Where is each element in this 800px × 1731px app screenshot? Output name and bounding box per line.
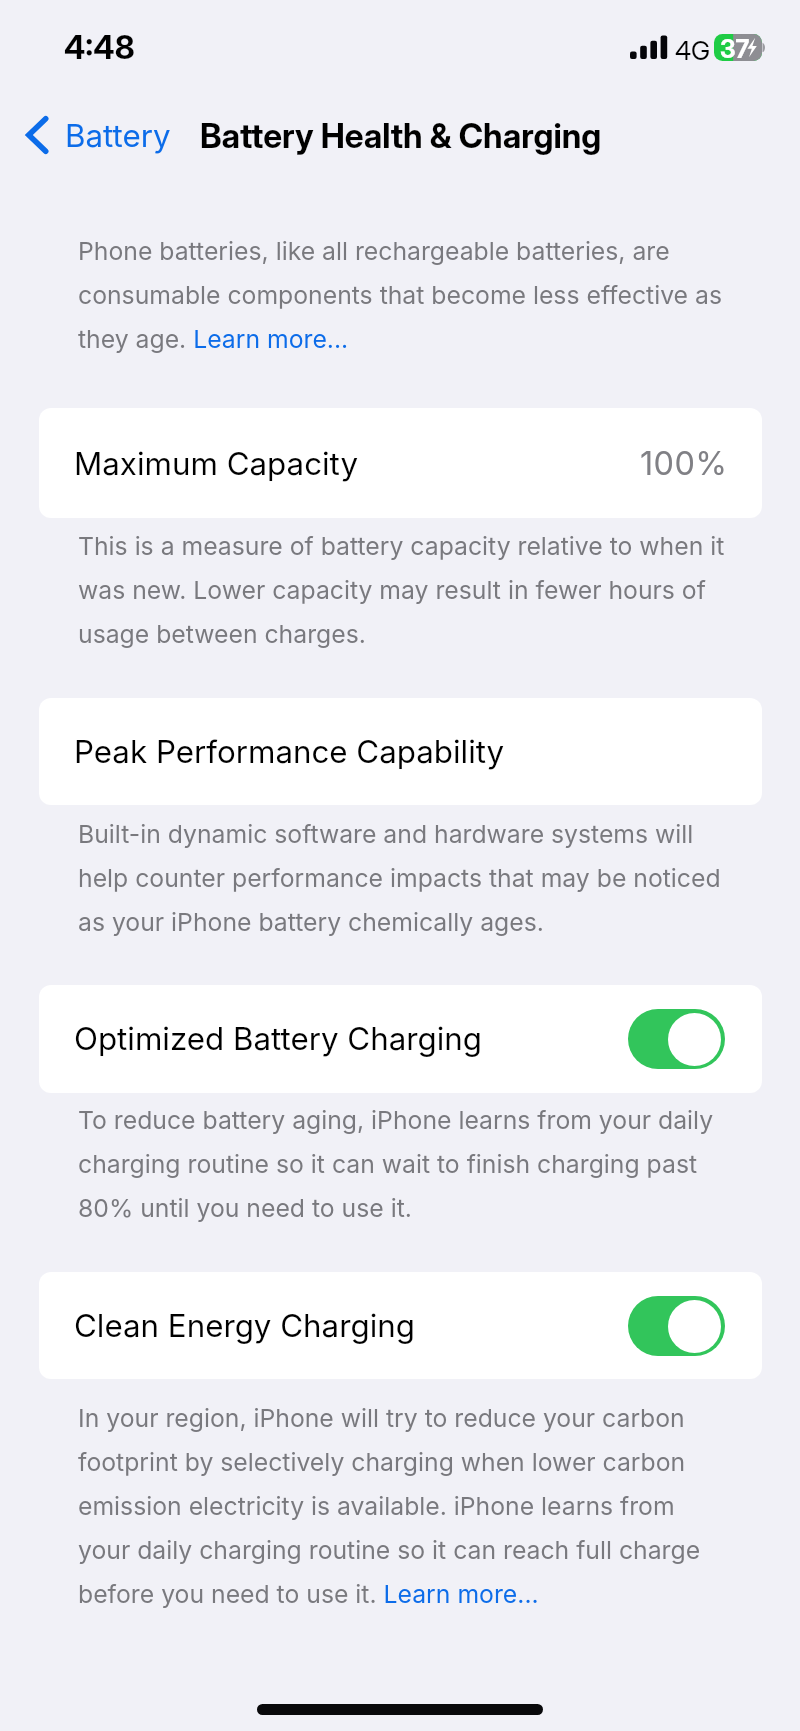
- staticText: To reduce battery aging, iPhone learns f…: [78, 1094, 728, 1226]
- staticText: Peak Performance Capability: [74, 733, 505, 771]
- staticText: Clean Energy Charging: [74, 1307, 415, 1345]
- staticText: This is a measure of battery capacity re…: [78, 520, 728, 652]
- button[interactable]: Phone batteries, like all rechargeable b…: [78, 225, 728, 357]
- staticText: 100%: [640, 444, 728, 483]
- button[interactable]: Clean Energy Charging: [39, 1272, 762, 1379]
- button[interactable]: Clean Energy Charging: [628, 1296, 725, 1356]
- button[interactable]: Maximum Capacity: [39, 408, 762, 518]
- staticText: 4:48: [64, 28, 135, 67]
- button[interactable]: Peak Performance Capability: [39, 698, 762, 805]
- staticText: Optimized Battery Charging: [74, 1020, 482, 1058]
- staticText: Maximum Capacity: [74, 445, 359, 483]
- button[interactable]: Back to Battery: [14, 104, 186, 166]
- staticText: Battery: [65, 117, 171, 155]
- staticText: 37: [720, 34, 750, 61]
- staticText: Built-in dynamic software and hardware s…: [78, 808, 728, 940]
- button[interactable]: In your region, iPhone will try to reduc…: [78, 1392, 728, 1612]
- staticText: Battery Health & Charging: [200, 116, 602, 157]
- button[interactable]: Optimized Battery Charging: [628, 1009, 725, 1069]
- button[interactable]: Optimized Battery Charging: [39, 985, 762, 1093]
- staticText: 4G: [675, 35, 711, 66]
